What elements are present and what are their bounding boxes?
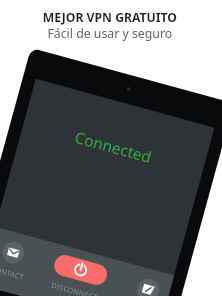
button[interactable]: Mejor VPN gratuito (0, 0, 222, 296)
